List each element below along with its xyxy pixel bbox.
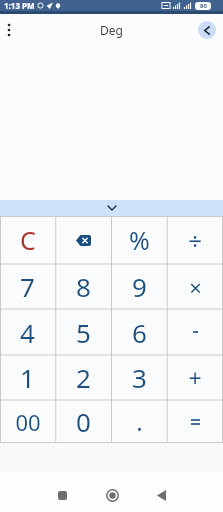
button[interactable]: 1 bbox=[0, 355, 55, 400]
staticText: Deg bbox=[100, 22, 123, 38]
button[interactable]: × bbox=[167, 264, 223, 309]
button[interactable]: 9 bbox=[111, 264, 167, 309]
button[interactable] bbox=[52, 485, 72, 505]
button[interactable]: 8 bbox=[55, 264, 111, 309]
staticText: 4 bbox=[20, 315, 35, 350]
button[interactable]: 5 bbox=[55, 309, 111, 355]
button[interactable]: 6 bbox=[111, 309, 167, 355]
button[interactable]: % bbox=[111, 216, 167, 264]
staticText: % bbox=[129, 223, 150, 257]
staticText: ÷ bbox=[188, 224, 202, 257]
button[interactable] bbox=[102, 485, 122, 505]
staticText: 2 bbox=[76, 360, 91, 395]
button[interactable] bbox=[167, 309, 223, 355]
staticText: × bbox=[189, 272, 202, 302]
button[interactable] bbox=[198, 21, 216, 39]
staticText: 1:13 PM bbox=[4, 0, 35, 11]
button[interactable]: ÷ bbox=[167, 216, 223, 264]
staticText: C bbox=[20, 223, 36, 257]
staticText: 6 bbox=[132, 315, 147, 350]
button[interactable] bbox=[55, 216, 111, 264]
button[interactable] bbox=[0, 200, 223, 216]
staticText: 7 bbox=[20, 269, 35, 304]
staticText: 0 bbox=[76, 404, 91, 439]
staticText: 00 bbox=[15, 407, 41, 437]
button[interactable] bbox=[167, 400, 223, 443]
staticText: + bbox=[188, 362, 202, 393]
button[interactable]: 00 bbox=[0, 400, 55, 443]
button[interactable] bbox=[0, 21, 18, 39]
button[interactable]: . bbox=[111, 400, 167, 443]
button[interactable]: + bbox=[167, 355, 223, 400]
staticText: 80 bbox=[200, 2, 207, 10]
button[interactable]: 3 bbox=[111, 355, 167, 400]
staticText: . bbox=[136, 405, 143, 438]
button[interactable]: 0 bbox=[55, 400, 111, 443]
button[interactable]: 7 bbox=[0, 264, 55, 309]
button[interactable]: 4 bbox=[0, 309, 55, 355]
button[interactable]: C bbox=[0, 216, 55, 264]
staticText: 1 bbox=[20, 360, 35, 395]
staticText: 3 bbox=[132, 360, 147, 395]
button[interactable] bbox=[151, 485, 171, 505]
staticText: 5 bbox=[76, 315, 91, 350]
staticText: 9 bbox=[132, 269, 147, 304]
staticText: 8 bbox=[76, 269, 91, 304]
button[interactable]: 2 bbox=[55, 355, 111, 400]
